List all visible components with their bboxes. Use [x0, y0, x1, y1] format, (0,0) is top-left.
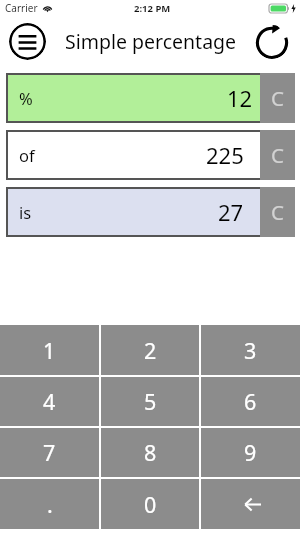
button[interactable]: Menu: [9, 23, 46, 60]
button[interactable]: 6: [201, 377, 300, 426]
staticText: 5: [144, 387, 157, 416]
staticText: 4: [43, 387, 56, 416]
staticText: is: [19, 201, 32, 223]
staticText: 7: [43, 438, 56, 467]
button[interactable]: 2: [101, 325, 199, 375]
button[interactable]: C: [260, 187, 295, 237]
button[interactable]: C: [260, 130, 295, 180]
staticText: Carrier: [5, 1, 38, 15]
staticText: 0: [144, 490, 157, 519]
staticText: C: [271, 84, 284, 112]
button[interactable]: is: [19, 187, 244, 237]
button[interactable]: 0: [101, 479, 199, 529]
button[interactable]: C: [260, 73, 295, 123]
button[interactable]: .: [0, 479, 99, 529]
staticText: C: [271, 198, 284, 226]
staticText: 2:12 PM: [134, 2, 171, 15]
staticText: 9: [244, 438, 257, 467]
button[interactable]: 8: [101, 428, 199, 477]
staticText: 225: [206, 140, 244, 170]
staticText: 12: [227, 83, 253, 113]
staticText: 3: [244, 336, 257, 365]
button[interactable]: 4: [0, 377, 99, 426]
button[interactable]: 7: [0, 428, 99, 477]
staticText: 27: [218, 197, 244, 227]
staticText: Simple percentage: [65, 28, 237, 55]
staticText: 1: [43, 336, 56, 365]
button[interactable]: 9: [201, 428, 300, 477]
button[interactable]: %: [19, 73, 253, 123]
staticText: 8: [144, 438, 157, 467]
button[interactable]: 3: [201, 325, 300, 375]
button[interactable]: Reset: [255, 25, 289, 59]
staticText: %: [19, 87, 33, 109]
staticText: C: [271, 141, 284, 169]
button[interactable]: of: [19, 130, 244, 180]
staticText: 2: [144, 336, 157, 365]
staticText: .: [47, 490, 53, 519]
staticText: 6: [244, 387, 257, 416]
button[interactable]: 5: [101, 377, 199, 426]
button[interactable]: Backspace: [201, 479, 300, 529]
staticText: of: [19, 144, 35, 166]
button[interactable]: 1: [0, 325, 99, 375]
